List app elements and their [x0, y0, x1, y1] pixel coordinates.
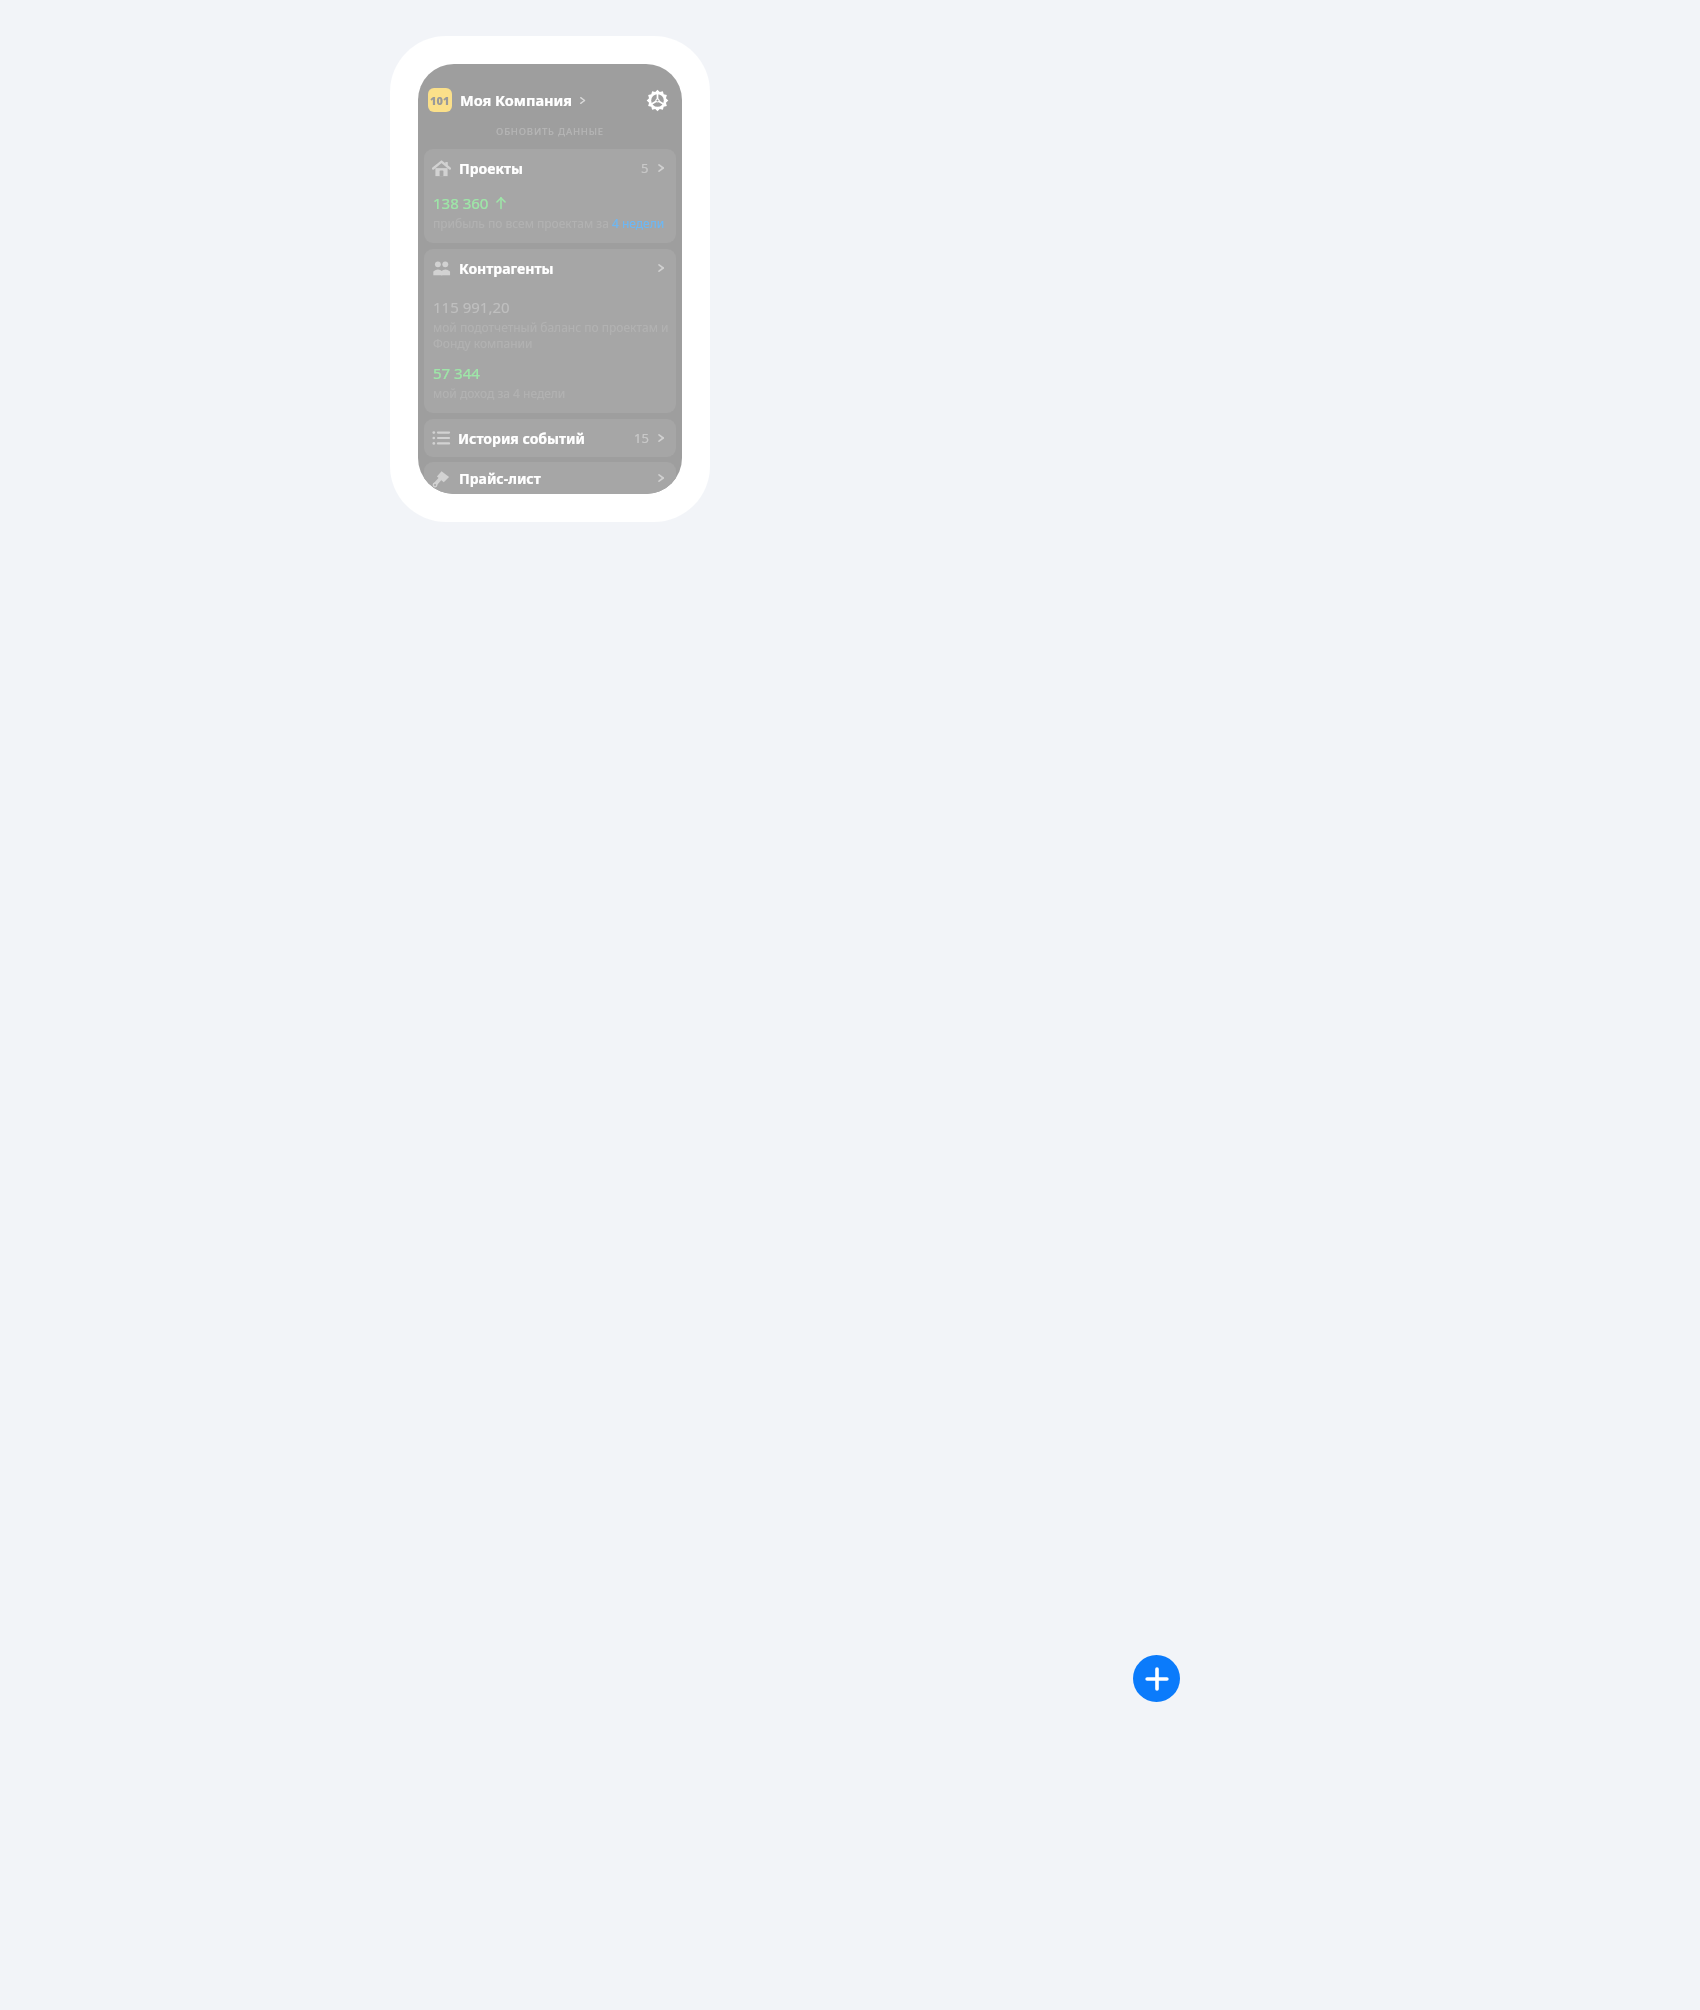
button[interactable]: Add — [1133, 1655, 1180, 1702]
staticText: 57 344 — [433, 363, 480, 383]
button[interactable]: Settings — [642, 85, 672, 115]
staticText: мой доход за 4 недели — [433, 385, 566, 401]
staticText: 138 360 — [433, 193, 489, 213]
staticText: 115 991,20 — [433, 297, 510, 317]
button[interactable]: История событий — [424, 419, 676, 457]
staticText: прибыль по всем проектам за 4 недели — [433, 215, 665, 231]
button[interactable]: Контрагенты — [424, 249, 676, 413]
staticText: Моя Компания — [460, 90, 573, 110]
staticText: 15 — [634, 429, 649, 447]
staticText: Проекты — [459, 159, 524, 178]
staticText: 101 — [430, 93, 450, 108]
staticText: История событий — [458, 429, 585, 448]
staticText: Контрагенты — [459, 259, 554, 278]
button[interactable]: Прайс-лист — [424, 462, 676, 494]
staticText: Прайс-лист — [459, 469, 541, 488]
button[interactable]: Проекты — [424, 149, 676, 243]
button[interactable]: 101 — [428, 88, 642, 112]
staticText: 5 — [641, 159, 649, 177]
staticText: мой подотчетный баланс по проектам и Фон… — [433, 319, 669, 352]
button[interactable]: ОБНОВИТЬ ДАННЫЕ — [418, 123, 682, 140]
